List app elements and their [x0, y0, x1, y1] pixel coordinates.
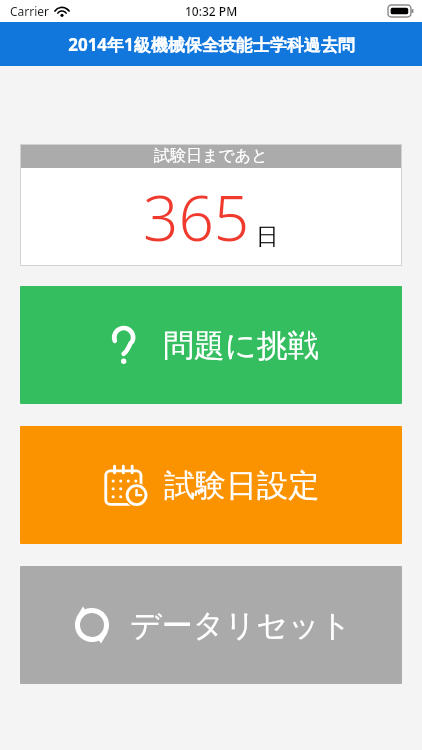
staticText: 2014年1級機械保全技能士学科過去問 [68, 33, 355, 56]
staticText: データリセット [130, 606, 352, 645]
button[interactable]: 問題に挑戦 [20, 286, 402, 404]
staticText: 試験日設定 [164, 466, 319, 505]
staticText: 試験日まであと [154, 146, 268, 166]
staticText: Carrier [10, 3, 50, 19]
button[interactable]: 試験日設定 [20, 426, 402, 544]
staticText: 365 [143, 175, 250, 259]
staticText: 日 [256, 222, 279, 251]
staticText: 10:32 PM [185, 3, 238, 19]
staticText: 問題に挑戦 [163, 326, 319, 365]
button[interactable]: データリセット [20, 566, 402, 684]
